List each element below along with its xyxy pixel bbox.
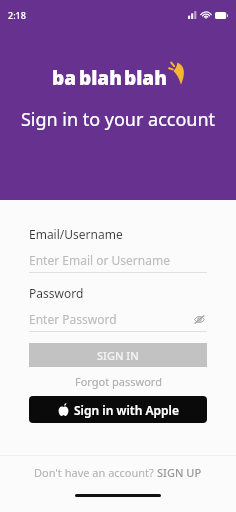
button[interactable]: Sign in with Apple (29, 396, 207, 423)
button[interactable]: SIGN IN (29, 343, 207, 367)
staticText: SIGN IN (97, 348, 139, 363)
button[interactable]: Enter Password (29, 311, 207, 327)
button[interactable]: Don't have an account? (0, 456, 236, 489)
button[interactable]: Show password (191, 311, 207, 327)
staticText: blah (124, 65, 167, 91)
staticText: Sign in to your account (0, 107, 236, 132)
staticText: Enter Email or Username (29, 252, 170, 268)
staticText: Sign in with Apple (74, 402, 179, 418)
staticText: ba (52, 65, 77, 91)
staticText: Password (29, 285, 84, 301)
staticText: Don't have an account? (34, 465, 157, 480)
staticText: Email/Username (29, 226, 123, 242)
button[interactable]: Enter Email or Username (29, 252, 207, 268)
staticText: blah (79, 65, 122, 91)
button[interactable]: Forgot password (29, 373, 207, 389)
staticText: SIGN UP (157, 465, 202, 480)
staticText: Enter Password (29, 311, 117, 327)
staticText: 2:18 (8, 9, 26, 21)
staticText: Forgot password (75, 374, 162, 389)
